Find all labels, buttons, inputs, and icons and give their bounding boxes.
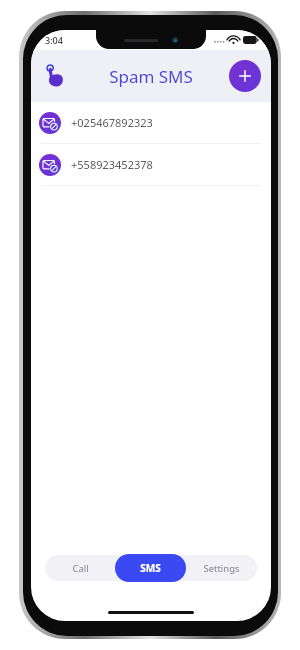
button[interactable]: Tap gesture bbox=[39, 60, 71, 92]
staticText: +025467892323 bbox=[71, 115, 153, 130]
button[interactable]: Add spam number bbox=[229, 60, 261, 92]
staticText: 3:04 bbox=[45, 34, 63, 46]
button[interactable]: Settings bbox=[186, 554, 257, 582]
staticText: Spam SMS bbox=[109, 65, 193, 88]
staticText: Call bbox=[72, 562, 89, 575]
button[interactable]: SMS bbox=[115, 554, 186, 582]
button[interactable]: +025467892323 bbox=[31, 102, 271, 143]
staticText: +558923452378 bbox=[71, 157, 153, 172]
button[interactable]: Call bbox=[45, 554, 115, 582]
button[interactable]: +558923452378 bbox=[31, 144, 271, 185]
staticText: SMS bbox=[140, 561, 161, 575]
staticText: Settings bbox=[203, 562, 240, 575]
